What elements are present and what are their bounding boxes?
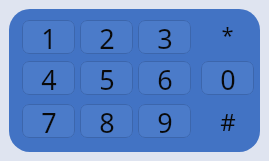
button[interactable]: Key 9 xyxy=(138,104,191,138)
button[interactable]: Key 7 xyxy=(22,104,75,138)
button[interactable]: Key 0 xyxy=(201,61,254,95)
staticText: 4 xyxy=(41,61,57,95)
button[interactable]: Key 6 xyxy=(138,61,191,95)
button[interactable]: Key 8 xyxy=(80,104,133,138)
staticText: 7 xyxy=(41,104,57,138)
button[interactable]: Key # xyxy=(201,104,254,138)
staticText: 8 xyxy=(99,104,115,138)
button[interactable]: Key 3 xyxy=(138,20,191,54)
button[interactable]: Key 2 xyxy=(80,20,133,54)
staticText: 2 xyxy=(99,20,115,54)
staticText: 5 xyxy=(99,61,115,95)
staticText: # xyxy=(220,105,236,138)
button[interactable]: Key 5 xyxy=(80,61,133,95)
staticText: 0 xyxy=(220,61,236,95)
staticText: 9 xyxy=(157,104,173,138)
staticText: 6 xyxy=(157,61,173,95)
button[interactable]: Key 1 xyxy=(22,20,75,54)
staticText: * xyxy=(221,19,234,49)
staticText: 1 xyxy=(41,20,57,54)
button[interactable]: Key 4 xyxy=(22,61,75,95)
button[interactable]: Key * xyxy=(201,20,254,54)
staticText: 3 xyxy=(157,20,173,54)
